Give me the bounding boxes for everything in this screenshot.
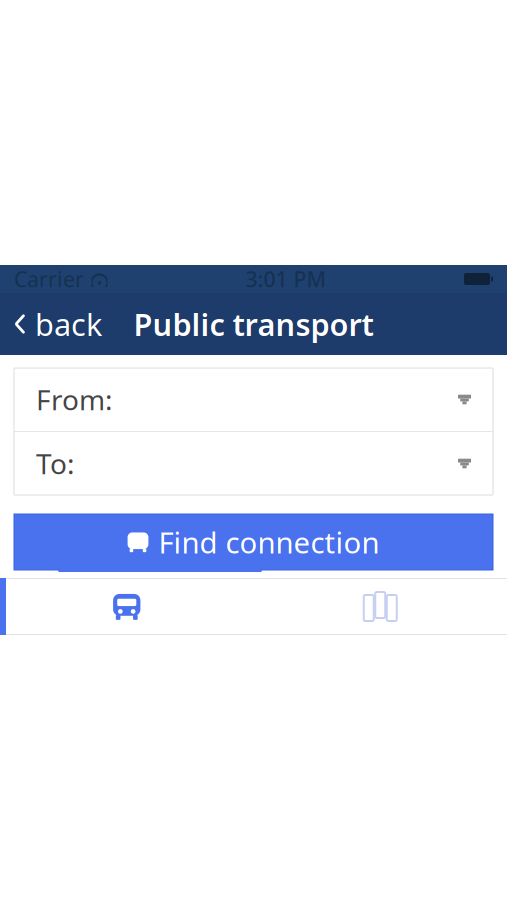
button[interactable]: From: (14, 368, 493, 431)
staticText: 3:01 PM (245, 265, 326, 293)
button[interactable]: To: (14, 432, 493, 495)
button[interactable]: Map (253, 578, 507, 635)
staticText: Find connection (158, 522, 379, 561)
staticText: back (35, 304, 102, 344)
staticText: Public transport (133, 304, 373, 344)
button[interactable]: Public transport (0, 578, 253, 635)
button[interactable]: Back (0, 293, 114, 355)
staticText: To: (36, 445, 75, 482)
button[interactable]: Find connection (14, 514, 493, 570)
staticText: Carrier (14, 265, 84, 293)
staticText: From: (36, 381, 113, 418)
